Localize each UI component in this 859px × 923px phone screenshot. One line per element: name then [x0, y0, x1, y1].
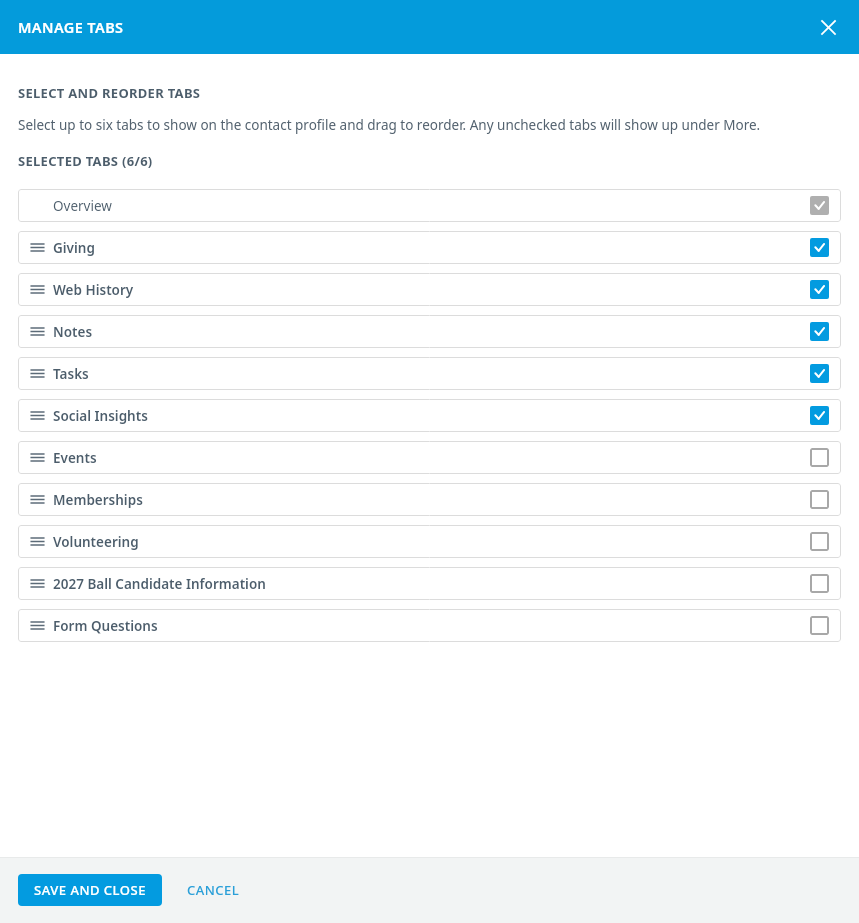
- staticText: CANCEL: [187, 881, 240, 899]
- staticText: SAVE AND CLOSE: [34, 881, 146, 899]
- staticText: Memberships: [53, 491, 143, 509]
- staticText: SELECTED TABS (6/6): [18, 152, 153, 170]
- button[interactable]: Unchecked: [810, 532, 829, 551]
- staticText: Volunteering: [53, 533, 139, 551]
- button[interactable]: Web History: [18, 273, 841, 306]
- staticText: 2027 Ball Candidate Information: [53, 575, 266, 593]
- button[interactable]: Checked: [810, 196, 829, 215]
- button[interactable]: Checked: [810, 322, 829, 341]
- button[interactable]: Close: [811, 10, 845, 44]
- staticText: SELECT AND REORDER TABS: [18, 84, 201, 102]
- button[interactable]: Social Insights: [18, 399, 841, 432]
- staticText: Tasks: [53, 365, 89, 383]
- button[interactable]: Volunteering: [18, 525, 841, 558]
- button[interactable]: Unchecked: [810, 574, 829, 593]
- button[interactable]: Checked: [810, 406, 829, 425]
- button[interactable]: 2027 Ball Candidate Information: [18, 567, 841, 600]
- button[interactable]: SAVE AND CLOSE: [18, 874, 162, 906]
- button[interactable]: Overview: [18, 189, 841, 222]
- button[interactable]: Unchecked: [810, 448, 829, 467]
- button[interactable]: Checked: [810, 364, 829, 383]
- button[interactable]: Unchecked: [810, 616, 829, 635]
- staticText: Web History: [53, 281, 134, 299]
- button[interactable]: Form Questions: [18, 609, 841, 642]
- button[interactable]: Giving: [18, 231, 841, 264]
- staticText: Overview: [53, 197, 112, 215]
- button[interactable]: Events: [18, 441, 841, 474]
- button[interactable]: Notes: [18, 315, 841, 348]
- button[interactable]: Unchecked: [810, 490, 829, 509]
- button[interactable]: Memberships: [18, 483, 841, 516]
- staticText: Events: [53, 449, 97, 467]
- staticText: Giving: [53, 239, 95, 257]
- button[interactable]: CANCEL: [178, 874, 249, 906]
- button[interactable]: Tasks: [18, 357, 841, 390]
- button[interactable]: Checked: [810, 238, 829, 257]
- staticText: Social Insights: [53, 407, 148, 425]
- staticText: Select up to six tabs to show on the con…: [18, 116, 761, 134]
- staticText: MANAGE TABS: [18, 17, 124, 37]
- staticText: Notes: [53, 323, 93, 341]
- button[interactable]: Checked: [810, 280, 829, 299]
- staticText: Form Questions: [53, 617, 158, 635]
